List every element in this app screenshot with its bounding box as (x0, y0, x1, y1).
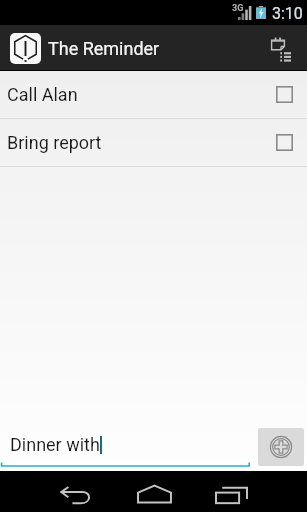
button[interactable]: Dinner with (0, 423, 250, 467)
button[interactable]: Back (47, 479, 103, 512)
button[interactable]: More options (270, 25, 307, 71)
button[interactable]: Bring report (0, 119, 307, 166)
button[interactable]: Add reminder (258, 428, 304, 466)
button[interactable]: Recent apps (203, 479, 259, 512)
staticText: Dinner with (10, 434, 100, 455)
staticText: The Reminder (48, 38, 160, 59)
staticText: Bring report (7, 132, 276, 153)
button[interactable]: The Reminder (0, 25, 166, 71)
button[interactable]: Home (126, 477, 182, 510)
staticText: 3G (232, 3, 244, 14)
staticText: 3:10 (272, 4, 303, 23)
button[interactable]: Call Alan (0, 71, 307, 118)
staticText: Call Alan (7, 84, 276, 105)
